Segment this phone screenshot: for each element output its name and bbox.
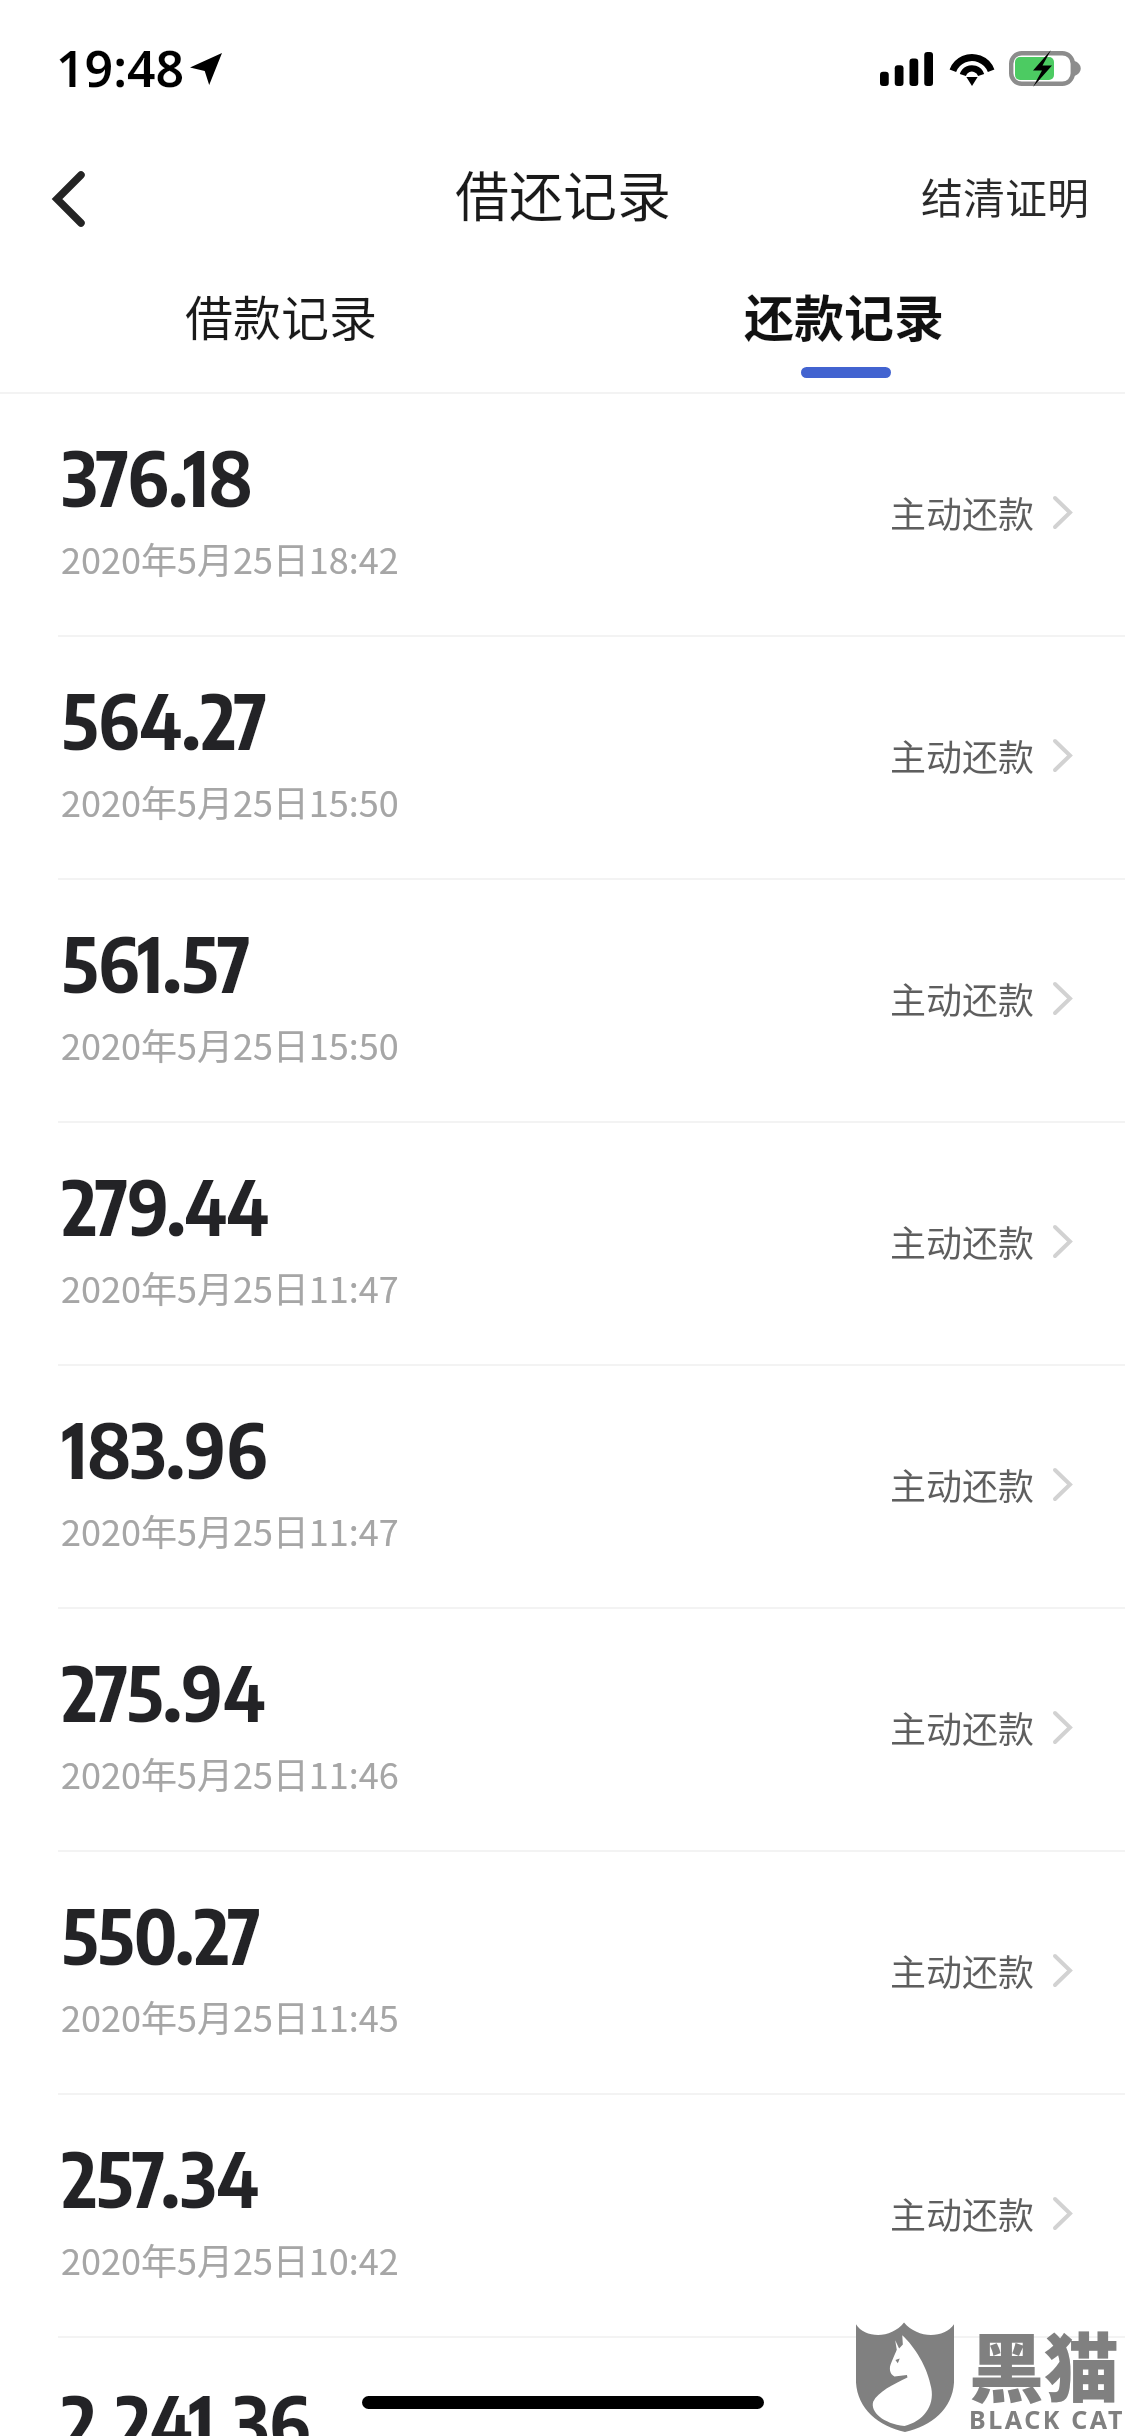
staticText: 279.44: [62, 1159, 269, 1253]
staticText: 主动还款: [890, 1944, 1035, 1996]
button[interactable]: 257.34: [0, 2095, 1125, 2336]
staticText: 2020年5月25日15:50: [61, 775, 399, 827]
staticText: 主动还款: [890, 1701, 1035, 1753]
staticText: 主动还款: [890, 1215, 1035, 1267]
button[interactable]: 借款记录: [0, 258, 562, 392]
staticText: 2020年5月25日11:46: [61, 1747, 399, 1799]
staticText: BLACK CAT: [969, 2402, 1125, 2436]
staticText: 借还记录: [455, 154, 671, 232]
staticText: 2020年5月25日10:42: [61, 2233, 399, 2285]
staticText: 550.27: [62, 1888, 262, 1982]
button[interactable]: 564.27: [0, 637, 1125, 878]
staticText: 2020年5月25日11:45: [61, 1990, 399, 2042]
staticText: 主动还款: [890, 729, 1035, 781]
staticText: 主动还款: [890, 486, 1035, 538]
staticText: 183.96: [62, 1402, 268, 1496]
staticText: 结清证明: [921, 165, 1090, 226]
button[interactable]: 返回: [0, 140, 125, 258]
button[interactable]: 2,241.36: [0, 2338, 1125, 2436]
button[interactable]: 结清证明: [881, 140, 1125, 258]
staticText: 275.94: [62, 1645, 266, 1739]
button[interactable]: 275.94: [0, 1609, 1125, 1850]
staticText: 还款记录: [744, 279, 944, 351]
staticText: 黑猫: [969, 2309, 1120, 2418]
staticText: 2020年5月25日15:50: [61, 1018, 399, 1070]
staticText: 2020年5月25日11:47: [61, 1261, 399, 1313]
staticText: 2,241.36: [62, 2375, 311, 2436]
button[interactable]: 183.96: [0, 1366, 1125, 1607]
staticText: 主动还款: [890, 972, 1035, 1024]
button[interactable]: 279.44: [0, 1123, 1125, 1364]
button[interactable]: 561.57: [0, 880, 1125, 1121]
button[interactable]: 还款记录: [562, 258, 1125, 392]
staticText: 借款记录: [185, 280, 378, 350]
staticText: 376.18: [62, 430, 253, 524]
button[interactable]: 376.18: [0, 394, 1125, 635]
button[interactable]: 550.27: [0, 1852, 1125, 2093]
staticText: 主动还款: [890, 1458, 1035, 1510]
staticText: 2020年5月25日11:47: [61, 1504, 399, 1556]
staticText: 19:48: [56, 34, 185, 102]
staticText: 564.27: [62, 673, 268, 767]
staticText: 主动还款: [890, 2187, 1035, 2239]
staticText: 257.34: [62, 2131, 259, 2225]
staticText: 2020年5月25日18:42: [61, 532, 399, 584]
staticText: 561.57: [62, 916, 251, 1010]
